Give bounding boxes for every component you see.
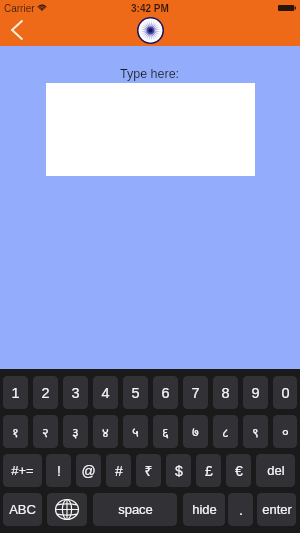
button[interactable]: 8 <box>213 376 238 409</box>
button[interactable]: Back <box>0 16 32 46</box>
button[interactable]: 5 <box>123 376 148 409</box>
button[interactable]: ३ <box>63 415 88 448</box>
button[interactable]: #+= <box>3 454 42 487</box>
button[interactable]: 6 <box>153 376 178 409</box>
button[interactable]: ६ <box>153 415 178 448</box>
staticText: ४ <box>102 423 109 441</box>
button[interactable]: 3 <box>63 376 88 409</box>
button[interactable]: ८ <box>213 415 238 448</box>
staticText: ! <box>57 463 61 479</box>
staticText: 6 <box>161 385 170 401</box>
button[interactable]: enter <box>257 493 296 526</box>
staticText: # <box>115 463 123 479</box>
staticText: Type here: <box>120 67 180 81</box>
button[interactable]: ९ <box>243 415 268 448</box>
button[interactable]: 4 <box>93 376 118 409</box>
staticText: 7 <box>191 385 200 401</box>
staticText: 9 <box>251 385 260 401</box>
staticText: $ <box>175 463 183 479</box>
staticText: ० <box>282 423 289 441</box>
button[interactable]: 2 <box>33 376 58 409</box>
button[interactable]: 9 <box>243 376 268 409</box>
button[interactable]: ४ <box>93 415 118 448</box>
staticText: ३ <box>72 423 79 441</box>
button[interactable]: £ <box>196 454 221 487</box>
staticText: € <box>235 463 243 479</box>
staticText: #+= <box>11 463 34 478</box>
button[interactable]: $ <box>166 454 191 487</box>
button[interactable]: Change keyboard language <box>47 493 87 526</box>
staticText: Carrier <box>4 3 35 14</box>
staticText: enter <box>262 502 292 517</box>
staticText: space <box>118 502 153 517</box>
staticText: £ <box>205 463 213 479</box>
button[interactable]: ५ <box>123 415 148 448</box>
button[interactable]: ७ <box>183 415 208 448</box>
staticText: ABC <box>9 502 36 517</box>
staticText: ७ <box>192 423 199 441</box>
button[interactable]: . <box>228 493 253 526</box>
staticText: del <box>267 463 285 478</box>
staticText: ९ <box>252 423 259 441</box>
staticText: 8 <box>221 385 230 401</box>
staticText: ६ <box>162 423 169 441</box>
button[interactable]: २ <box>33 415 58 448</box>
staticText: 1 <box>11 385 20 401</box>
staticText: 3 <box>71 385 80 401</box>
button[interactable]: @ <box>76 454 101 487</box>
staticText: २ <box>42 423 49 441</box>
button[interactable]: १ <box>3 415 28 448</box>
button[interactable]: ABC <box>3 493 42 526</box>
staticText: 2 <box>41 385 50 401</box>
staticText: 5 <box>131 385 140 401</box>
button[interactable]: 1 <box>3 376 28 409</box>
staticText: 0 <box>281 385 290 401</box>
staticText: 4 <box>101 385 110 401</box>
button[interactable]: hide <box>183 493 225 526</box>
staticText: . <box>239 502 243 518</box>
button[interactable]: € <box>226 454 251 487</box>
button[interactable]: # <box>106 454 131 487</box>
button[interactable]: ₹ <box>136 454 161 487</box>
staticText: ८ <box>222 423 229 441</box>
staticText: १ <box>12 423 19 441</box>
staticText: ५ <box>132 423 139 441</box>
staticText: @ <box>81 463 96 479</box>
button[interactable]: 0 <box>273 376 297 409</box>
staticText: 3:42 PM <box>131 3 169 14</box>
button[interactable]: 7 <box>183 376 208 409</box>
staticText: hide <box>192 502 217 517</box>
button[interactable]: space <box>93 493 177 526</box>
button[interactable]: ! <box>46 454 71 487</box>
button[interactable]: del <box>256 454 295 487</box>
staticText: ₹ <box>144 461 153 480</box>
button[interactable]: ० <box>273 415 297 448</box>
